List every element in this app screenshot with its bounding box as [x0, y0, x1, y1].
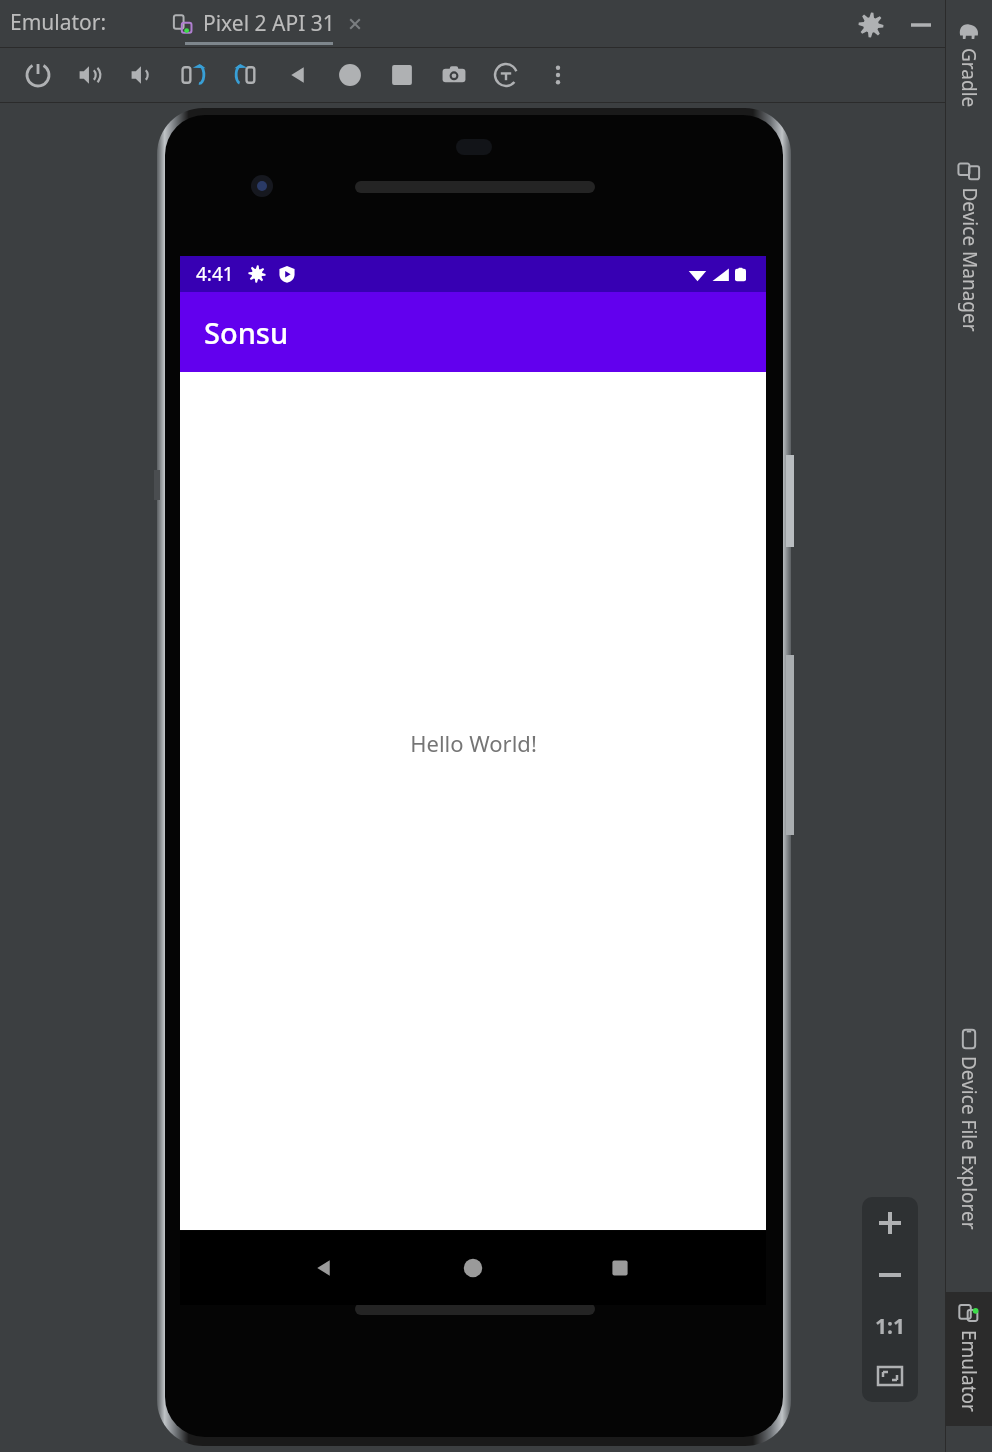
button[interactable]: Gradle [945, 10, 992, 121]
button[interactable]: Power [12, 49, 64, 101]
staticText: 4:41 [196, 261, 234, 287]
staticText: Pixel 2 API 31 [203, 9, 335, 38]
button[interactable]: Minimize [908, 12, 934, 38]
button[interactable]: Screenshot [428, 49, 480, 101]
button[interactable]: Pixel 2 API 31 [145, 0, 365, 47]
button[interactable]: Emulator [945, 1292, 992, 1426]
staticText: Emulator: [10, 8, 107, 37]
button[interactable]: Emulator settings [858, 12, 884, 38]
staticText: Gradle [956, 48, 982, 108]
button[interactable]: Close tab [345, 14, 365, 34]
button[interactable]: Overview [376, 49, 428, 101]
button[interactable]: Actual size [862, 1301, 918, 1351]
button[interactable]: Home [433, 1231, 513, 1305]
button[interactable]: More [532, 49, 584, 101]
staticText: 1:1 [875, 1312, 905, 1341]
button[interactable]: Record [480, 49, 532, 101]
button[interactable]: Rotate left [168, 49, 220, 101]
staticText: Sonsu [204, 313, 289, 352]
button[interactable]: Volume up [64, 49, 116, 101]
button[interactable]: Zoom out [862, 1249, 918, 1301]
staticText: Device Manager [956, 187, 982, 332]
staticText: Device File Explorer [956, 1056, 982, 1230]
button[interactable]: Back [272, 49, 324, 101]
button[interactable]: Volume down [116, 49, 168, 101]
button[interactable]: Rotate right [220, 49, 272, 101]
button[interactable]: Device File Explorer [945, 1018, 992, 1290]
button[interactable]: Home [324, 49, 376, 101]
staticText: Hello World! [410, 728, 537, 758]
button[interactable]: Overview [580, 1231, 660, 1305]
button[interactable]: Device Manager [945, 150, 992, 353]
button[interactable]: Fit to screen [862, 1351, 918, 1401]
staticText: Emulator [956, 1330, 982, 1412]
button[interactable]: Back [284, 1231, 364, 1305]
button[interactable]: Zoom in [862, 1197, 918, 1249]
